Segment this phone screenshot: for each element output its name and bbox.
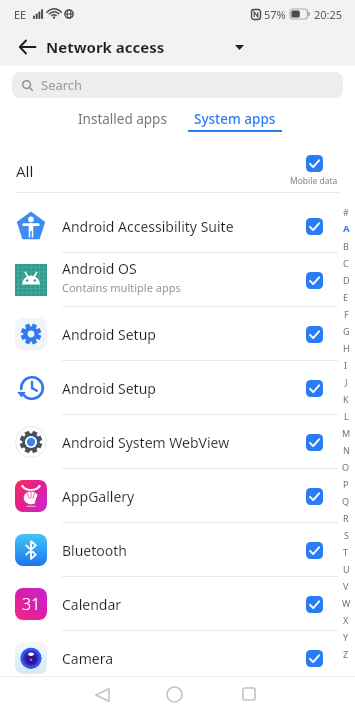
button[interactable]: System apps [188, 110, 282, 132]
staticText: Mobile data [290, 175, 338, 187]
button[interactable]: All [0, 136, 355, 193]
button[interactable] [82, 676, 122, 712]
staticText: K [343, 393, 349, 405]
button[interactable] [15, 35, 39, 59]
button[interactable]: Android System WebView [0, 415, 355, 469]
button[interactable]: AppGallery [0, 469, 355, 523]
staticText: Android OS [62, 259, 137, 278]
staticText: P [343, 478, 349, 490]
button[interactable] [306, 380, 323, 397]
button[interactable] [306, 488, 323, 505]
staticText: R [343, 512, 349, 524]
button[interactable] [306, 650, 323, 667]
staticText: U [343, 563, 350, 575]
staticText: X [343, 614, 349, 626]
staticText: All [16, 161, 34, 181]
button[interactable]: Android Setup [0, 361, 355, 415]
staticText: Android Setup [62, 379, 156, 398]
staticText: 57% [264, 7, 286, 22]
staticText: Contains multiple apps [62, 280, 181, 295]
staticText: Android System WebView [62, 433, 230, 452]
button[interactable]: Camera [0, 631, 355, 685]
staticText: System apps [194, 110, 276, 128]
staticText: # [343, 206, 349, 218]
staticText: O [342, 461, 350, 473]
staticText: W [342, 597, 351, 609]
staticText: D [343, 274, 350, 286]
staticText: Bluetooth [62, 541, 127, 560]
button[interactable]: Bluetooth [0, 523, 355, 577]
button[interactable] [306, 596, 323, 613]
staticText: B [343, 240, 349, 252]
staticText: V [343, 580, 349, 592]
button[interactable]: Android Setup [0, 307, 355, 361]
button[interactable] [306, 218, 323, 235]
staticText: Android Accessibility Suite [62, 217, 234, 236]
staticText: N [343, 444, 350, 456]
staticText: A [343, 222, 350, 235]
staticText: T [343, 546, 349, 558]
staticText: AppGallery [62, 487, 135, 506]
button[interactable] [306, 155, 323, 172]
button[interactable]: Installed apps [78, 110, 167, 128]
button[interactable] [229, 37, 249, 57]
button[interactable] [306, 272, 323, 289]
staticText: G [343, 325, 350, 337]
staticText: I [344, 359, 348, 371]
staticText: H [343, 342, 350, 354]
staticText: E [343, 291, 349, 303]
staticText: 20:25 [314, 7, 343, 22]
button[interactable]: Android Accessibility Suite [0, 199, 355, 253]
button[interactable] [229, 676, 269, 712]
button[interactable] [306, 326, 323, 343]
staticText: Q [342, 495, 350, 507]
button[interactable] [306, 542, 323, 559]
staticText: S [344, 529, 349, 541]
button[interactable]: Android OS [0, 253, 355, 307]
staticText: Android Setup [62, 325, 156, 344]
button[interactable]: 31 [0, 577, 355, 631]
button[interactable]: Search [12, 72, 343, 98]
button[interactable] [154, 676, 194, 712]
staticText: Installed apps [78, 110, 167, 128]
staticText: Search [41, 76, 83, 94]
staticText: Y [343, 631, 349, 643]
staticText: M [342, 427, 351, 439]
staticText: Calendar [62, 595, 122, 614]
staticText: L [344, 410, 349, 422]
staticText: C [343, 257, 349, 269]
staticText: Network access [46, 37, 165, 57]
staticText: 31 [22, 593, 41, 615]
staticText: J [345, 376, 348, 388]
staticText: EE [14, 7, 27, 22]
staticText: Camera [62, 649, 114, 668]
staticText: F [344, 308, 349, 320]
staticText: Z [343, 648, 349, 660]
button[interactable] [306, 434, 323, 451]
